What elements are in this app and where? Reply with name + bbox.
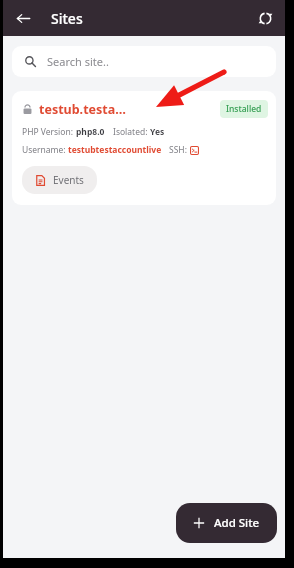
button[interactable]: Back: [9, 4, 37, 32]
staticText: Events: [53, 173, 84, 187]
staticText: Add Site: [214, 515, 260, 531]
button[interactable]: Open SSH terminal: [190, 146, 199, 155]
button[interactable]: Refresh: [251, 4, 279, 32]
staticText: testub.testaccount.live: [39, 101, 129, 118]
staticText: php8.0: [76, 126, 105, 138]
staticText: Yes: [150, 126, 165, 138]
button[interactable]: Add Site: [176, 503, 277, 543]
staticText: testubtestaccountlive: [68, 144, 162, 156]
button[interactable]: Search site..: [12, 46, 276, 77]
staticText: Installed: [226, 103, 262, 115]
staticText: SSH:: [169, 144, 190, 156]
staticText: Username:: [22, 144, 68, 156]
button[interactable]: testub.testaccount.live: [12, 91, 276, 205]
staticText: Search site..: [47, 54, 109, 69]
staticText: PHP Version:: [22, 126, 76, 138]
staticText: Isolated:: [113, 126, 150, 138]
button[interactable]: Events: [22, 166, 97, 194]
staticText: Sites: [51, 9, 83, 28]
